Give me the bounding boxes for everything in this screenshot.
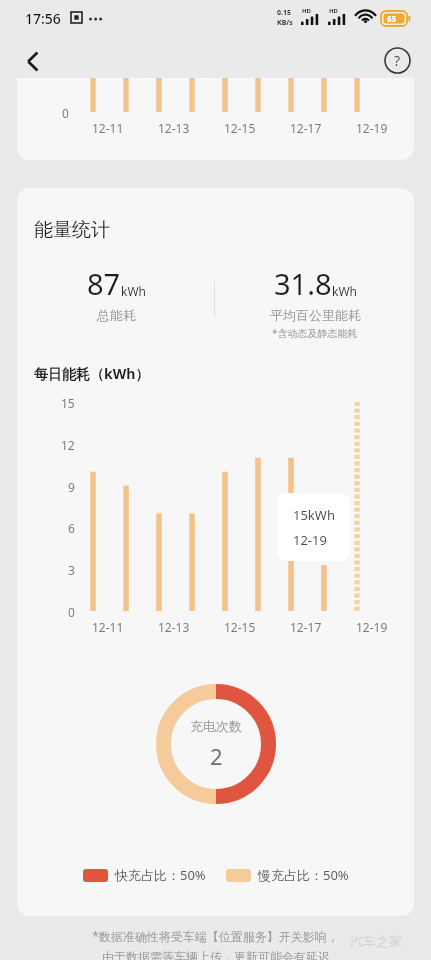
- staticText: 12: [61, 437, 75, 453]
- staticText: 慢充占比：50%: [258, 866, 349, 884]
- staticText: 31.8: [274, 264, 332, 303]
- button[interactable]: Back: [13, 40, 55, 82]
- staticText: 2: [210, 741, 223, 771]
- staticText: 平均百公里能耗: [270, 307, 361, 323]
- staticText: *数据准确性将受车端【位置服务】开关影响，: [92, 928, 339, 944]
- staticText: 12-17: [290, 619, 322, 635]
- staticText: 能量统计: [34, 218, 110, 242]
- staticText: HD: [302, 7, 311, 15]
- staticText: 12-15: [224, 120, 256, 136]
- staticText: 总能耗: [97, 307, 136, 323]
- staticText: kWh: [332, 283, 357, 299]
- button[interactable]: 0: [17, 78, 414, 160]
- staticText: 汽车之家: [350, 933, 402, 949]
- staticText: 12-17: [290, 120, 322, 136]
- staticText: 12-13: [158, 619, 190, 635]
- staticText: 12-11: [92, 120, 124, 136]
- staticText: 17:56: [25, 9, 61, 28]
- staticText: 12-19: [356, 120, 388, 136]
- staticText: 12-15: [224, 619, 256, 635]
- staticText: 充电次数: [190, 718, 242, 734]
- staticText: kWh: [121, 283, 146, 299]
- staticText: 12-19: [293, 531, 327, 549]
- staticText: 每日能耗（kWh）: [34, 364, 150, 383]
- staticText: 3: [68, 562, 75, 578]
- staticText: 0: [62, 105, 69, 121]
- button[interactable]: 15kWh: [277, 493, 350, 561]
- staticText: ?: [394, 51, 401, 70]
- staticText: 12-19: [356, 619, 388, 635]
- staticText: 12-13: [158, 120, 190, 136]
- staticText: 15kWh: [293, 506, 335, 524]
- staticText: 由于数据需等车辆上传，更新可能会有延迟: [102, 949, 330, 960]
- staticText: 87: [87, 264, 121, 303]
- staticText: 65: [387, 13, 397, 24]
- staticText: 0.15: [277, 8, 291, 18]
- staticText: 6: [68, 520, 75, 536]
- staticText: 9: [68, 479, 75, 495]
- staticText: 12-11: [92, 619, 124, 635]
- staticText: 快充占比：50%: [115, 866, 206, 884]
- staticText: KB/s: [277, 18, 293, 28]
- button[interactable]: 快充占比：50%: [83, 864, 206, 886]
- button[interactable]: 慢充占比：50%: [226, 864, 349, 886]
- staticText: 0: [68, 604, 75, 620]
- staticText: HD: [329, 7, 338, 15]
- staticText: *含动态及静态能耗: [272, 326, 358, 340]
- staticText: 15: [61, 395, 75, 411]
- button[interactable]: Help: [376, 39, 418, 81]
